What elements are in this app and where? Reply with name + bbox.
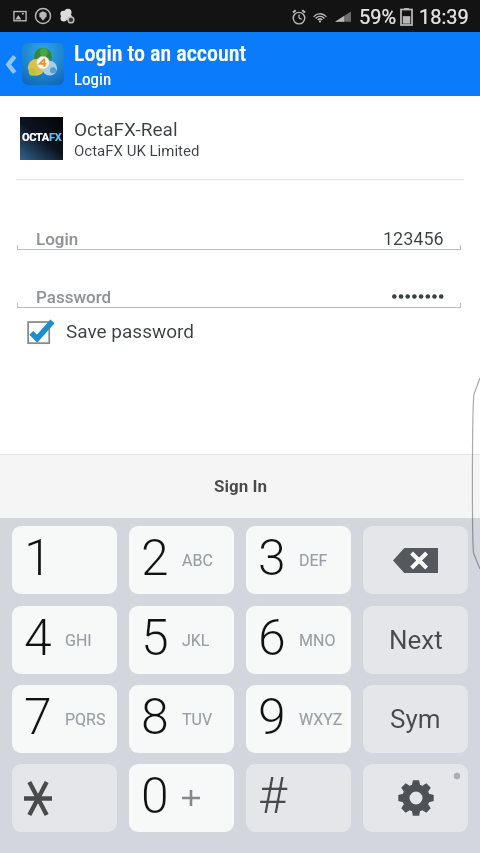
staticText: Login to an account <box>74 41 247 67</box>
staticText: 0 <box>141 767 169 826</box>
button[interactable]: Sign In <box>0 454 480 518</box>
staticText: 2 <box>141 529 169 588</box>
button[interactable]: Back <box>0 42 22 86</box>
button[interactable]: Login <box>17 214 461 250</box>
button[interactable]: Next <box>363 606 468 674</box>
button[interactable]: 8 <box>129 685 234 753</box>
button[interactable]: Sym <box>363 685 468 753</box>
button[interactable]: # <box>246 764 351 832</box>
button[interactable]: OCTA <box>0 96 480 181</box>
staticText: Login <box>36 229 79 249</box>
button[interactable]: 4 <box>12 606 117 674</box>
staticText: 123456 <box>383 228 444 249</box>
staticText: WXYZ <box>299 710 343 729</box>
staticText: Next <box>389 625 443 655</box>
staticText: PQRS <box>65 710 106 729</box>
button[interactable]: Backspace <box>363 526 468 594</box>
button[interactable]: 1 <box>12 526 117 594</box>
button[interactable]: 7 <box>12 685 117 753</box>
staticText: 3 <box>258 529 286 588</box>
staticText: OctaFX-Real <box>74 118 178 140</box>
staticText: JKL <box>182 631 210 650</box>
button[interactable]: 9 <box>246 685 351 753</box>
button[interactable]: 3 <box>246 526 351 594</box>
staticText: TUV <box>182 710 213 729</box>
staticText: 59% <box>359 5 397 28</box>
staticText: # <box>258 767 287 826</box>
staticText: MNO <box>299 631 336 650</box>
staticText: 6 <box>258 609 286 668</box>
button[interactable]: 0 <box>129 764 234 832</box>
staticText: GHI <box>65 631 92 650</box>
staticText: OctaFX UK Limited <box>74 142 200 160</box>
button[interactable]: 5 <box>129 606 234 674</box>
staticText: Sym <box>390 704 441 734</box>
staticText: 5 <box>141 609 169 668</box>
staticText: Login <box>74 69 112 89</box>
staticText: ABC <box>182 551 213 570</box>
button[interactable]: Keyboard settings <box>363 764 468 832</box>
button[interactable]: Save password <box>23 313 195 349</box>
staticText: 7 <box>24 688 52 747</box>
staticText: 18:39 <box>419 5 469 28</box>
staticText: 8 <box>141 688 169 747</box>
button[interactable]: Password <box>17 272 461 308</box>
button[interactable] <box>12 764 117 832</box>
button[interactable]: 6 <box>246 606 351 674</box>
staticText: DEF <box>299 551 328 570</box>
staticText: 1 <box>24 529 52 588</box>
staticText: 9 <box>258 688 286 747</box>
staticText: FX <box>49 131 62 144</box>
staticText: OCTA <box>22 131 49 144</box>
staticText: Password <box>36 287 112 307</box>
staticText: 4 <box>24 609 52 668</box>
button[interactable]: 2 <box>129 526 234 594</box>
staticText: Save password <box>66 320 195 342</box>
staticText: Sign In <box>214 476 267 496</box>
